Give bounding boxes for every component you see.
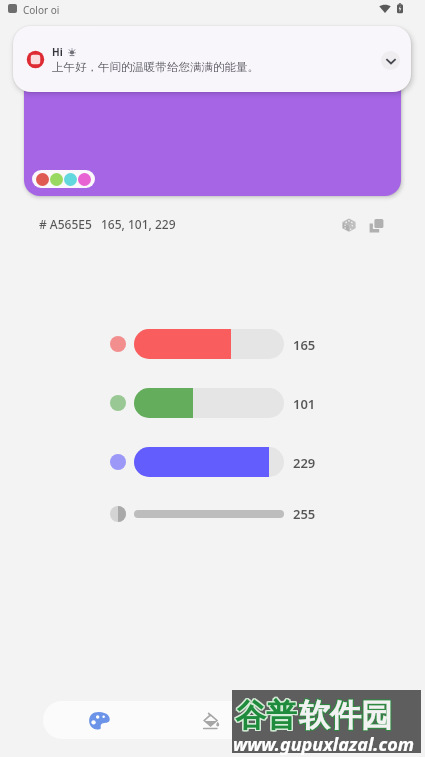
button[interactable]: Copy [364,213,388,237]
staticText: 谷普 [234,696,296,735]
staticText: 软件园 [299,697,392,736]
button[interactable] [134,388,284,418]
staticText: Color oi [23,3,60,17]
staticText: www.gupuxlazal.com [233,732,415,757]
button[interactable] [24,60,401,196]
staticText: 谷普 [234,695,296,734]
staticText: 255 [293,505,316,521]
staticText: 谷普 [235,697,297,736]
staticText: 软件园 [300,697,393,736]
staticText: 软件园 [300,695,393,734]
staticText: 谷普 [236,697,298,736]
button[interactable]: Fill [191,701,229,739]
staticText: 谷普 [235,695,297,734]
staticText: 软件园 [300,696,393,735]
staticText: 软件园 [299,696,392,735]
button[interactable] [32,170,95,188]
staticText: 229 [293,454,316,472]
button[interactable]: Hi [13,26,411,92]
staticText: 软件园 [298,697,391,736]
staticText: 165, 101, 229 [101,216,176,232]
button[interactable] [134,510,284,518]
staticText: 谷普 [234,697,296,736]
staticText: 软件园 [299,695,392,734]
staticText: 101 [293,395,316,413]
staticText: 软件园 [298,695,391,734]
button[interactable]: Expand [381,51,400,70]
button[interactable] [134,447,284,477]
staticText: 谷普 [236,695,298,734]
staticText: 165 [293,336,316,354]
button[interactable]: Palette [80,701,118,739]
staticText: # A565E5 [39,216,92,232]
button[interactable]: Random color [337,213,361,237]
staticText: 谷普 [235,696,297,735]
button[interactable] [134,329,284,359]
staticText: 谷普 [236,696,298,735]
staticText: 软件园 [298,696,391,735]
staticText: Hi [52,45,63,59]
staticText: 上午好，午间的温暖带给您满满的能量。 [52,60,259,74]
